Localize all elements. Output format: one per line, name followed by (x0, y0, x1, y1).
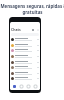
button[interactable]: Updates (19, 84, 24, 89)
button[interactable]: Calls (33, 84, 38, 89)
staticText: Mensagens seguras, rápidas & (0, 3, 64, 9)
staticText: gratuitas (22, 9, 43, 15)
button[interactable]: Chats (12, 84, 17, 89)
button[interactable] (11, 65, 39, 70)
button[interactable] (11, 54, 39, 59)
button[interactable]: Communities (26, 84, 31, 89)
button[interactable]: More options (36, 28, 39, 31)
button[interactable] (11, 60, 39, 65)
button[interactable] (11, 37, 39, 42)
button[interactable] (11, 71, 39, 76)
staticText: Chats (11, 27, 21, 31)
button[interactable] (11, 76, 39, 81)
button[interactable] (11, 48, 39, 53)
button[interactable] (11, 43, 39, 48)
button[interactable]: Camera (31, 28, 34, 31)
